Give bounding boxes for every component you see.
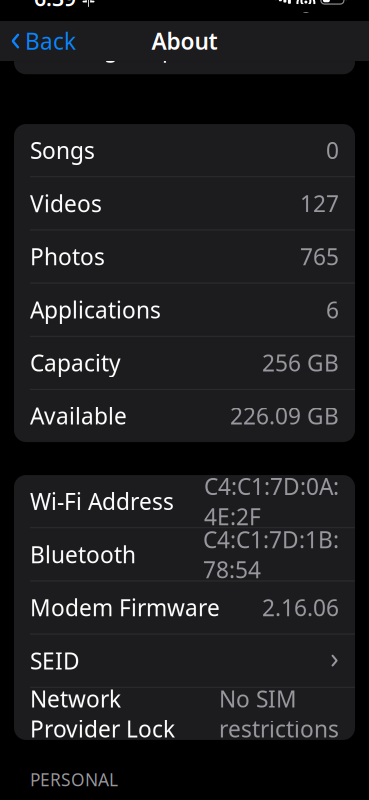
button[interactable]: Photos <box>14 230 355 283</box>
button[interactable]: Coverage Expired <box>0 61 369 87</box>
staticText: No SIM restrictions <box>219 684 339 744</box>
staticText: Capacity <box>30 348 121 378</box>
staticText: C4:C1:7D:0A:4E:2F <box>204 471 339 531</box>
staticText: Back <box>25 26 76 56</box>
staticText: Bluetooth <box>30 539 136 569</box>
staticText: 2.16.06 <box>262 592 339 622</box>
staticText: Wi-Fi Address <box>30 486 174 516</box>
staticText: 6 <box>326 294 339 325</box>
button[interactable]: Network Provider Lock <box>14 687 355 740</box>
staticText: Videos <box>30 188 102 218</box>
staticText: Modem Firmware <box>30 592 220 622</box>
staticText: PERSONAL <box>30 768 118 791</box>
button[interactable]: Modem Firmware <box>14 581 355 634</box>
button[interactable]: Songs <box>14 124 355 176</box>
staticText: SEID <box>30 645 80 676</box>
staticText: Photos <box>30 241 105 271</box>
button[interactable]: Wi-Fi Address <box>14 475 355 527</box>
staticText: 226.09 GB <box>230 401 339 431</box>
staticText: Songs <box>30 135 95 165</box>
staticText: About <box>151 26 217 56</box>
button[interactable]: SEID <box>14 634 355 687</box>
staticText: 0 <box>326 135 339 165</box>
staticText: C4:C1:7D:1B:78:54 <box>203 524 339 584</box>
staticText: Network Provider Lock <box>30 684 175 744</box>
button[interactable]: Capacity <box>14 336 355 389</box>
button[interactable]: Videos <box>14 177 355 230</box>
button[interactable]: Available <box>14 389 355 442</box>
button[interactable]: Back <box>0 20 76 62</box>
button[interactable]: Bluetooth <box>14 528 355 581</box>
staticText: 6:39 <box>34 0 76 12</box>
button[interactable]: Applications <box>14 283 355 336</box>
staticText: Available <box>30 401 127 431</box>
staticText: Coverage Expired <box>30 33 218 63</box>
staticText: 256 GB <box>262 348 339 378</box>
staticText: 765 <box>300 241 339 271</box>
staticText: 127 <box>300 188 339 218</box>
staticText: Applications <box>30 294 161 325</box>
